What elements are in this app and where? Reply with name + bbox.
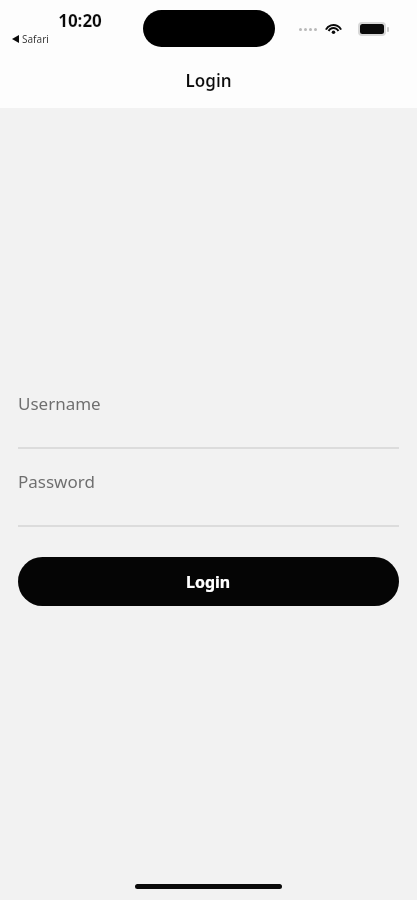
button[interactable]: Username: [18, 388, 399, 449]
staticText: 10:20: [50, 9, 110, 32]
button[interactable]: Login: [18, 557, 399, 606]
other: Home indicator: [135, 884, 282, 889]
staticText: Login: [0, 69, 417, 92]
staticText: Password: [18, 470, 95, 493]
button[interactable]: Password: [18, 466, 399, 527]
staticText: Login: [186, 571, 231, 593]
staticText: Username: [18, 392, 101, 415]
button[interactable]: Safari: [11, 31, 50, 47]
staticText: Safari: [22, 32, 49, 46]
